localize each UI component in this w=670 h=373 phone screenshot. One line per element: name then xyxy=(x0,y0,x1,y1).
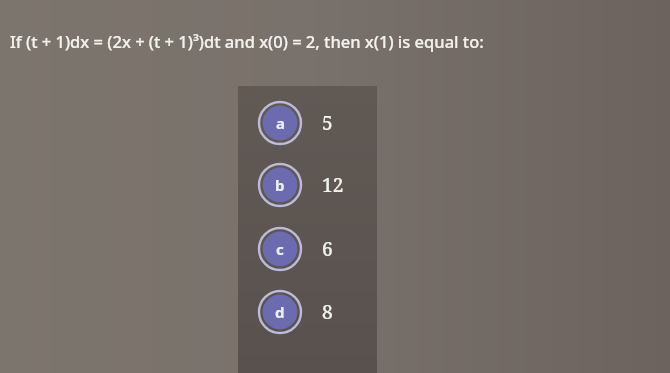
staticText: 5 xyxy=(322,110,333,136)
staticText: If (t + 1)dx = (2x + (t + 1)³)dt and x(0… xyxy=(10,30,484,52)
staticText: b xyxy=(275,175,285,195)
button[interactable]: Option a: 5 xyxy=(258,101,353,145)
button[interactable]: Option c: 6 xyxy=(258,227,353,271)
staticText: 8 xyxy=(322,299,333,325)
staticText: 6 xyxy=(322,236,333,262)
staticText: d xyxy=(275,302,285,322)
staticText: 12 xyxy=(322,172,344,198)
button[interactable]: Option d: 8 xyxy=(258,290,353,334)
staticText: a xyxy=(276,113,285,133)
button[interactable]: Option b: 12 xyxy=(258,163,353,207)
staticText: c xyxy=(276,239,284,259)
